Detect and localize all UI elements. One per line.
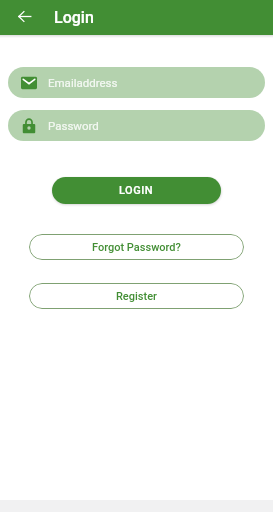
button[interactable]: LOGIN: [52, 177, 221, 204]
button[interactable]: Emailaddress: [8, 67, 265, 98]
button[interactable]: Password: [8, 110, 265, 141]
staticText: Password: [48, 119, 99, 132]
button[interactable]: Register: [29, 283, 244, 309]
staticText: Login: [54, 8, 94, 27]
staticText: Forgot Password?: [92, 241, 181, 254]
button[interactable]: Forgot Password?: [29, 234, 244, 260]
staticText: Emailaddress: [48, 76, 118, 89]
staticText: LOGIN: [119, 184, 154, 197]
staticText: Register: [116, 290, 157, 303]
button[interactable]: Back: [12, 4, 37, 29]
